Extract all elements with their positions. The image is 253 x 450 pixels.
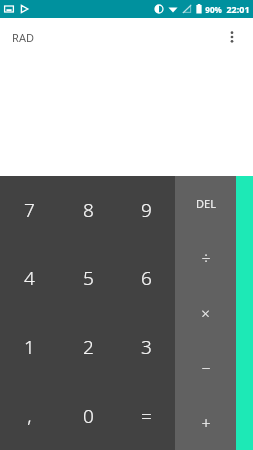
staticText: 5 bbox=[83, 265, 94, 291]
staticText: − bbox=[201, 357, 211, 379]
staticText: 6 bbox=[141, 265, 152, 291]
button[interactable]: × bbox=[175, 285, 236, 340]
button[interactable]: 7 bbox=[0, 176, 59, 244]
button[interactable]: 2 bbox=[59, 312, 117, 381]
staticText: 2 bbox=[83, 334, 94, 360]
button[interactable]: 3 bbox=[117, 312, 175, 381]
staticText: 4 bbox=[24, 265, 35, 291]
staticText: 7 bbox=[24, 197, 35, 223]
button[interactable]: + bbox=[175, 395, 236, 450]
staticText: 8 bbox=[83, 197, 94, 223]
staticText: = bbox=[141, 403, 152, 429]
staticText: 9 bbox=[141, 197, 152, 223]
button[interactable]: 5 bbox=[59, 244, 117, 312]
button[interactable]: DEL bbox=[175, 176, 236, 230]
staticText: 22:01 bbox=[226, 3, 250, 15]
staticText: 0 bbox=[83, 403, 94, 429]
staticText: 90% bbox=[205, 4, 222, 15]
staticText: RAD bbox=[12, 30, 34, 45]
button[interactable]: − bbox=[175, 340, 236, 395]
staticText: ÷ bbox=[201, 247, 211, 269]
button[interactable]: RAD bbox=[6, 24, 40, 51]
staticText: , bbox=[27, 403, 32, 429]
button[interactable]: = bbox=[117, 381, 175, 450]
button[interactable]: , bbox=[0, 381, 59, 450]
button[interactable]: ÷ bbox=[175, 230, 236, 285]
button[interactable]: 6 bbox=[117, 244, 175, 312]
button[interactable]: 1 bbox=[0, 312, 59, 381]
staticText: × bbox=[201, 303, 210, 323]
staticText: DEL bbox=[196, 196, 216, 211]
button[interactable]: 0 bbox=[59, 381, 117, 450]
button[interactable]: 9 bbox=[117, 176, 175, 244]
button[interactable]: More options bbox=[215, 20, 249, 54]
staticText: 1 bbox=[24, 334, 35, 360]
staticText: + bbox=[201, 412, 211, 434]
button[interactable]: 4 bbox=[0, 244, 59, 312]
staticText: 3 bbox=[141, 334, 152, 360]
button[interactable]: 8 bbox=[59, 176, 117, 244]
